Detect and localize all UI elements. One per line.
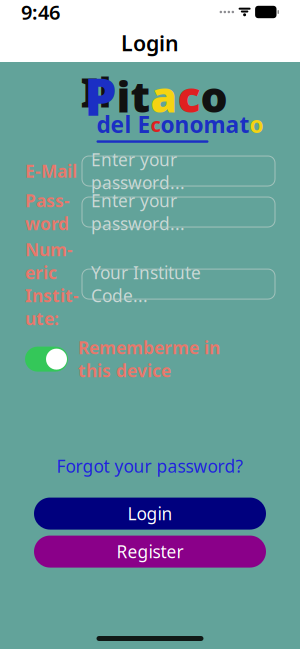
button[interactable]: Enter your password... — [82, 197, 275, 227]
staticText: 9:46 — [21, 0, 60, 25]
staticText: Enter your password... — [91, 148, 185, 194]
staticText: Register — [116, 540, 183, 563]
button[interactable]: Enter your password... — [82, 156, 275, 186]
staticText: Numeric Institute: — [25, 238, 79, 330]
button[interactable]: Your Institute Code... — [82, 269, 275, 299]
staticText: o — [200, 68, 227, 124]
staticText: c — [177, 68, 200, 124]
staticText: Forgot your password? — [56, 455, 243, 478]
button[interactable]: Rememberme in this device — [0, 336, 300, 382]
staticText: P — [84, 62, 116, 130]
staticText: it — [116, 68, 150, 124]
button[interactable]: Login — [34, 498, 266, 530]
staticText: o — [249, 109, 263, 139]
staticText: Your Institute Code... — [91, 261, 201, 307]
staticText: a — [150, 68, 177, 124]
staticText: Rememberme in this device — [78, 336, 220, 382]
staticText: Il — [80, 65, 111, 118]
staticText: c — [150, 111, 160, 138]
staticText: E-Mail — [25, 159, 77, 182]
staticText: Login — [127, 502, 172, 525]
staticText: Login — [121, 29, 179, 57]
button[interactable]: Forgot your password? — [0, 451, 300, 482]
staticText: del E — [96, 109, 150, 139]
button[interactable]: Register — [34, 536, 266, 568]
staticText: Enter your password... — [91, 189, 185, 235]
staticText: Password — [25, 189, 70, 235]
staticText: onomat — [160, 109, 249, 139]
